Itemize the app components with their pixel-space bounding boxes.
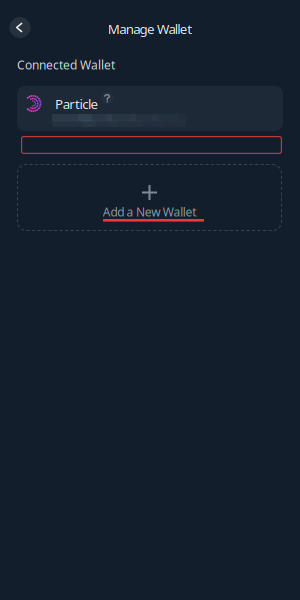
staticText: Connected Wallet — [17, 57, 115, 73]
button[interactable]: Add a New Wallet — [17, 164, 282, 231]
staticText: Add a New Wallet — [103, 204, 196, 220]
button[interactable]: Wallet address field — [21, 136, 282, 154]
button[interactable]: Particle — [17, 86, 283, 131]
button[interactable]: Back — [9, 17, 30, 38]
staticText: Particle — [55, 95, 99, 113]
staticText: Manage Wallet — [108, 20, 192, 38]
